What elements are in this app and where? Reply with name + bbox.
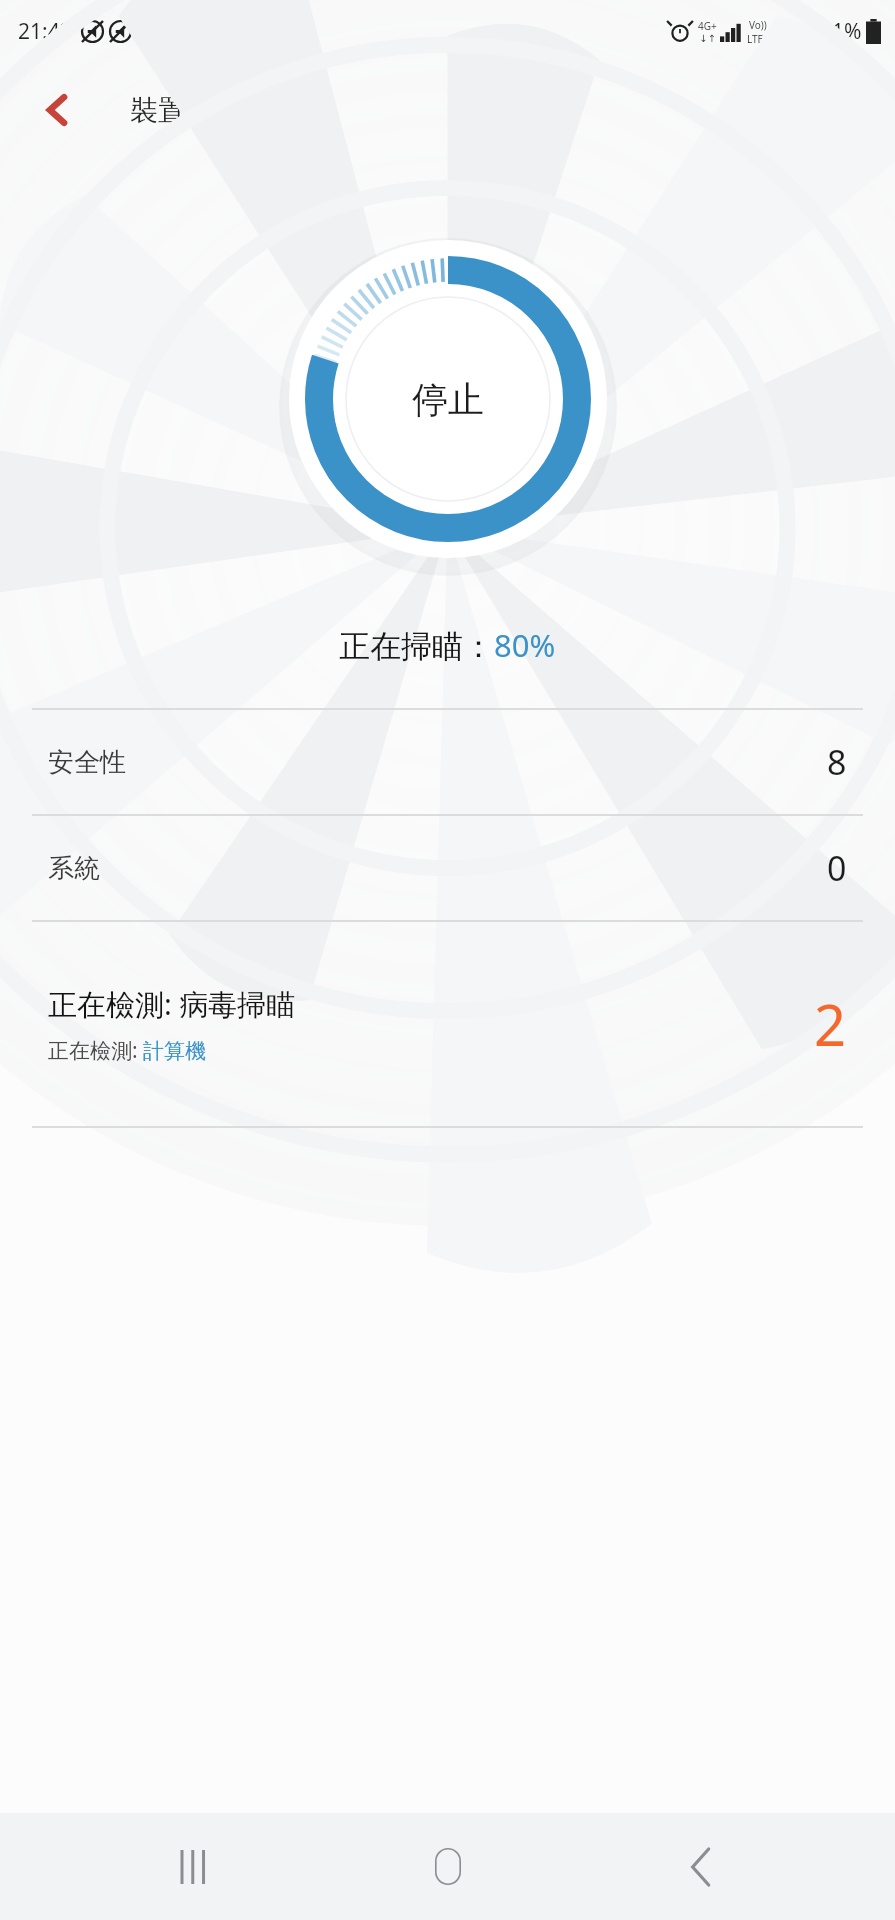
staticText: 21:43	[18, 17, 72, 46]
staticText: 4G+	[698, 19, 717, 33]
button[interactable]: Recent apps	[134, 1813, 254, 1920]
button[interactable]: Home	[388, 1813, 508, 1920]
staticText: 2	[814, 986, 847, 1062]
staticText: 系統	[48, 852, 100, 885]
staticText: 8	[827, 739, 847, 785]
staticText: LTE2	[747, 32, 769, 46]
staticText: 安全性	[48, 746, 126, 779]
button[interactable]: Back	[30, 82, 86, 138]
staticText: 停止	[412, 377, 484, 422]
staticText: Vo))	[749, 18, 767, 32]
staticText: ↓↑	[699, 33, 716, 45]
staticText: 0	[827, 845, 847, 891]
staticText: 正在檢測: 病毒掃瞄	[48, 984, 296, 1024]
staticText: 91%	[820, 17, 862, 46]
staticText: 正在檢測: 計算機	[48, 1036, 207, 1065]
staticText: 裝置掃瞄	[130, 93, 242, 128]
button[interactable]: 系統	[0, 816, 895, 920]
button[interactable]: 安全性	[0, 710, 895, 814]
button[interactable]: Stop scan	[283, 234, 613, 564]
button[interactable]: Back	[641, 1813, 761, 1920]
staticText: 正在掃瞄：80%	[339, 624, 556, 666]
button[interactable]: 正在檢測: 病毒掃瞄	[0, 922, 895, 1126]
